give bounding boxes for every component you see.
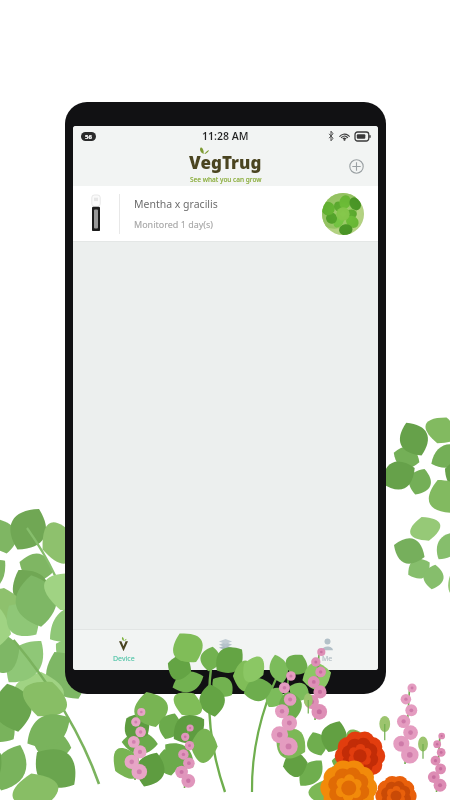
staticText: Device [113,654,135,664]
staticText: See what you can grow [190,175,262,184]
button[interactable]: Plants [174,630,276,670]
staticText: Mentha x gracilis [134,197,218,211]
staticText: VegTrug [189,151,262,174]
staticText: 56 [85,133,92,141]
staticText: Monitored 1 day(s) [134,218,214,230]
staticText: Me [322,654,333,664]
button[interactable]: Device [73,630,174,670]
staticText: Plants [215,654,236,664]
button[interactable]: Me [276,630,378,670]
button[interactable]: Mentha x gracilis [73,186,378,241]
staticText: 11:28 AM [202,129,249,143]
button[interactable]: Add device [342,152,370,180]
